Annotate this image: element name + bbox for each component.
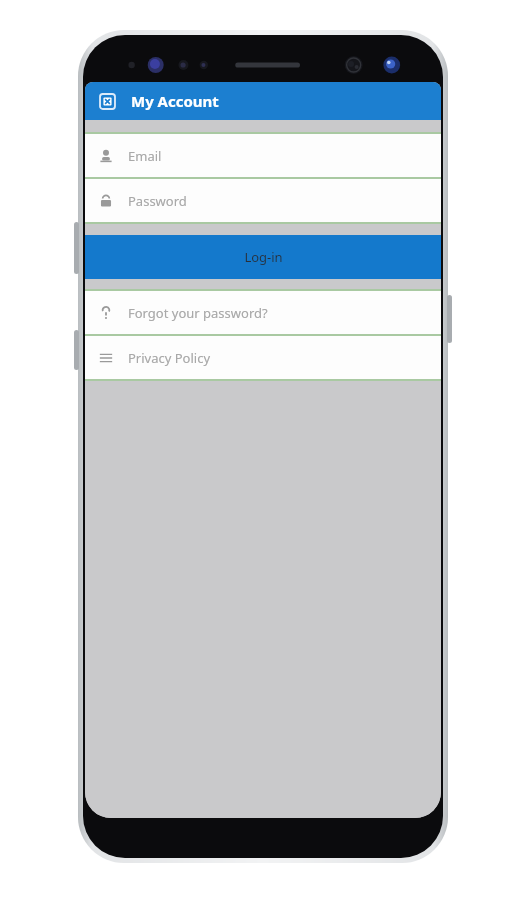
staticText: Password [128,192,187,210]
button[interactable]: Email [85,134,441,177]
button[interactable]: Password [85,179,441,222]
staticText: Privacy Policy [128,349,211,367]
button[interactable]: Log-in [85,235,441,279]
staticText: Log-in [244,248,283,266]
button[interactable]: Forgot your password? [85,291,441,334]
button[interactable]: Privacy Policy [85,336,441,379]
staticText: Forgot your password? [128,304,268,322]
staticText: Email [128,147,162,165]
button[interactable]: App icon [94,88,120,114]
staticText: My Account [131,91,219,111]
